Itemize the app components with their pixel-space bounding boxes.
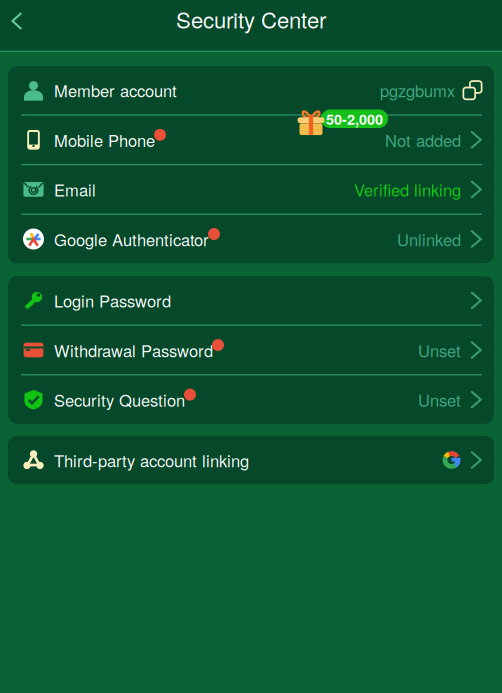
staticText: pgzgbumx [380,78,455,102]
staticText: Third-party account linking [54,448,249,472]
staticText: Verified linking [354,178,461,201]
staticText: Email [54,178,96,201]
staticText: Mobile Phone [54,128,155,152]
staticText: Withdrawal Password [54,338,213,362]
staticText: Unlinked [397,227,461,251]
staticText: Security Question [54,388,185,411]
button[interactable]: Mobile Phone [8,116,494,164]
staticText: Google Authenticator [54,227,209,251]
staticText: Not added [385,128,461,152]
staticText: Unset [418,388,461,411]
button[interactable]: Withdrawal Password [8,326,494,374]
staticText: Security Center [176,3,326,35]
staticText: Unset [418,338,461,362]
button[interactable]: Email [8,165,494,214]
staticText: Login Password [54,289,171,312]
button[interactable]: Third-party account linking [8,436,494,484]
button[interactable]: Member account [8,66,494,114]
staticText: Member account [54,78,177,102]
button[interactable]: Back [0,4,34,38]
button[interactable]: Security Question [8,375,494,424]
staticText: 50-2,000 [326,108,383,129]
button[interactable]: Google Authenticator [8,215,494,263]
button[interactable]: Login Password [8,276,494,325]
